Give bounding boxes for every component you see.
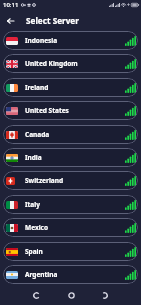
staticText: Argentina xyxy=(25,270,58,279)
staticText: Switzerland xyxy=(25,176,64,185)
staticText: United Kingdom xyxy=(25,59,78,68)
button[interactable]: United Kingdom xyxy=(3,54,138,73)
button[interactable]: United States xyxy=(3,101,138,120)
button[interactable]: Ireland xyxy=(3,78,138,97)
staticText: Spain xyxy=(25,247,43,256)
button[interactable]: India xyxy=(3,148,138,167)
staticText: Canada xyxy=(25,130,50,139)
button[interactable]: Back xyxy=(29,288,43,302)
button[interactable]: Spain xyxy=(3,242,138,261)
staticText: Italy xyxy=(25,200,40,209)
button[interactable]: Indonesia xyxy=(3,31,138,50)
staticText: Mexico xyxy=(25,223,48,232)
staticText: Select Server xyxy=(26,15,79,26)
staticText: 10:11 xyxy=(3,1,19,9)
button[interactable]: Back xyxy=(3,14,17,28)
staticText: United States xyxy=(25,106,69,115)
button[interactable]: Italy xyxy=(3,195,138,214)
staticText: Indonesia xyxy=(25,36,58,45)
button[interactable]: Mexico xyxy=(3,218,138,237)
staticText: Ireland xyxy=(25,83,49,92)
button[interactable]: Canada xyxy=(3,125,138,144)
button[interactable]: Switzerland xyxy=(3,171,138,190)
button[interactable]: Argentina xyxy=(3,265,138,284)
button[interactable]: Recents xyxy=(97,288,111,302)
staticText: + xyxy=(127,2,130,9)
staticText: India xyxy=(25,153,42,162)
button[interactable]: Home xyxy=(64,288,78,302)
